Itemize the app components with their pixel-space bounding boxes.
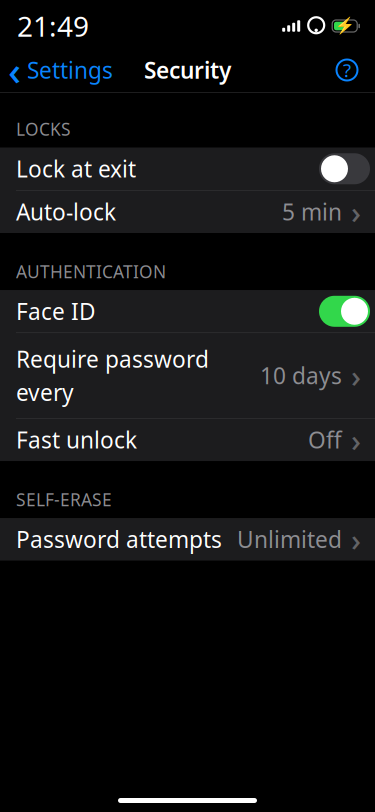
staticText: LOCKS <box>16 117 71 140</box>
button[interactable]: Help <box>327 50 367 90</box>
button[interactable]: Require password <box>0 333 375 418</box>
staticText: 21:49 <box>17 7 89 45</box>
staticText: Require password <box>16 344 209 374</box>
button[interactable]: Password attempts <box>0 518 375 561</box>
staticText: Fast unlock <box>16 425 137 455</box>
staticText: Settings <box>27 55 113 85</box>
staticText: Off <box>308 425 342 455</box>
staticText: Unlimited <box>237 524 342 554</box>
button[interactable]: Fast unlock <box>0 418 375 461</box>
staticText: Password attempts <box>16 524 222 554</box>
staticText: AUTHENTICATION <box>16 260 166 283</box>
staticText: Security <box>144 55 231 85</box>
staticText: › <box>351 519 361 560</box>
staticText: every <box>16 377 74 407</box>
button[interactable]: Lock at exit <box>0 147 375 190</box>
staticText: › <box>351 191 361 232</box>
staticText: Face ID <box>16 296 96 326</box>
staticText: ? <box>343 58 351 82</box>
button[interactable]: ‹ <box>0 38 113 101</box>
staticText: › <box>351 355 361 396</box>
staticText: 10 days <box>260 360 342 391</box>
staticText: Auto-lock <box>16 197 116 227</box>
staticText: › <box>351 419 361 460</box>
staticText: ⚡ <box>335 17 355 35</box>
button[interactable]: Face ID <box>0 290 375 332</box>
staticText: ‹ <box>8 43 21 96</box>
staticText: SELF-ERASE <box>16 488 112 511</box>
staticText: 5 min <box>282 197 342 227</box>
staticText: Lock at exit <box>16 154 136 184</box>
button[interactable]: Auto-lock <box>0 190 375 233</box>
